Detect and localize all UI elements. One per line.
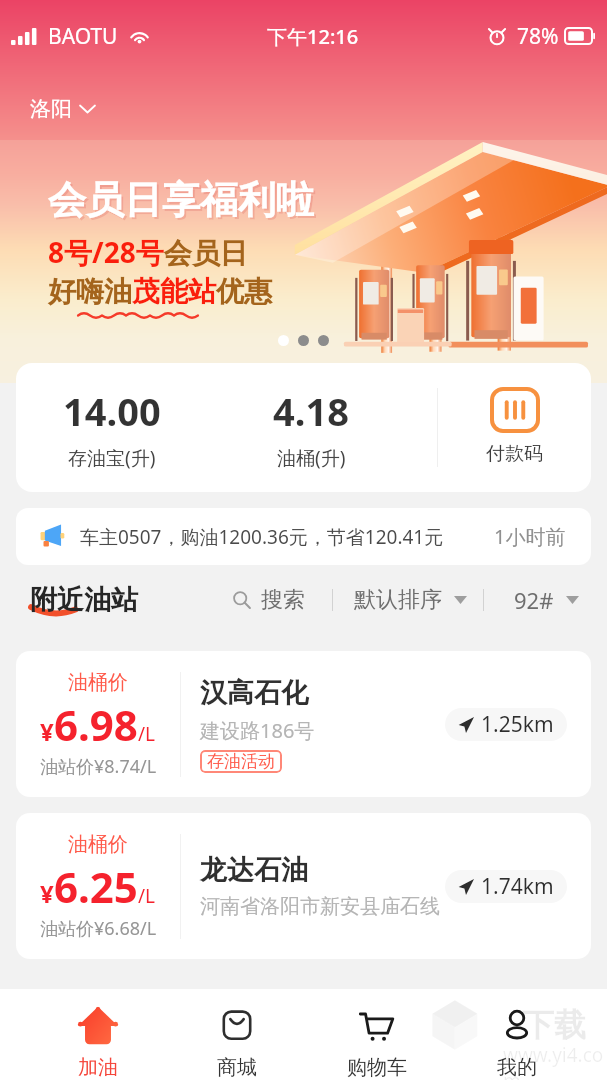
staticText: 建设路186号	[200, 717, 315, 744]
staticText: 车主0507，购油1200.36元，节省120.41元	[80, 524, 444, 550]
staticText: 8号/28号会员日	[48, 233, 248, 271]
staticText: 油桶价	[68, 670, 128, 695]
button[interactable]: 洛阳	[30, 96, 95, 122]
button[interactable]: 1.25km	[445, 708, 567, 741]
staticText: 洛阳	[30, 96, 72, 122]
staticText: 4.18	[273, 385, 349, 437]
staticText: 油站价¥8.74/L	[40, 754, 157, 779]
staticText: 78%	[517, 22, 559, 51]
staticText: ¥	[40, 877, 54, 910]
staticText: 1小时前	[494, 523, 566, 550]
staticText: 油桶(升)	[277, 445, 346, 471]
other: 付款码	[492, 389, 538, 431]
button[interactable]: 4.18	[207, 363, 415, 492]
staticText: /L	[138, 883, 156, 909]
button[interactable]: 油桶价	[16, 651, 591, 797]
staticText: 6.25	[54, 858, 138, 915]
button[interactable]: 搜索	[233, 586, 305, 614]
staticText: ¥	[40, 715, 54, 748]
staticText: 会员日享福利啦	[48, 176, 314, 224]
staticText: BAOTU	[48, 22, 118, 51]
staticText: 下载	[522, 1005, 586, 1045]
staticText: 我的	[497, 1055, 537, 1080]
button[interactable]: 购物车	[307, 989, 447, 1080]
button[interactable]: 我的	[447, 989, 587, 1080]
staticText: 付款码	[486, 442, 543, 466]
staticText: 购物车	[347, 1055, 407, 1080]
staticText: 搜索	[261, 586, 305, 614]
staticText: 油桶价	[68, 832, 128, 857]
staticText: 存油活动	[207, 751, 275, 772]
button[interactable]: 商城	[167, 989, 307, 1080]
staticText: 6.98	[54, 696, 138, 753]
staticText: 附近油站	[30, 583, 138, 617]
staticText: www.yi4.com	[503, 1042, 607, 1080]
staticText: 商城	[217, 1055, 257, 1080]
staticText: 加油	[78, 1055, 118, 1080]
staticText: 存油宝(升)	[68, 445, 156, 471]
staticText: /L	[138, 721, 156, 747]
button[interactable]: 油桶价	[16, 813, 591, 959]
staticText: 下午12:16	[267, 23, 359, 50]
other: 购物车	[355, 1006, 399, 1046]
staticText: 好嗨油茂能站优惠	[48, 274, 272, 309]
staticText: 油站价¥6.68/L	[40, 916, 157, 941]
staticText: 1.25km	[481, 710, 554, 739]
button[interactable]: 1.74km	[445, 870, 567, 903]
staticText: 会员日享福利啦	[50, 178, 316, 226]
staticText: 龙达石油	[200, 853, 308, 887]
button[interactable]: 付款码	[438, 363, 591, 492]
other: 加油	[76, 1006, 120, 1046]
button[interactable]: 车主0507，购油1200.36元，节省120.41元	[16, 508, 591, 565]
button[interactable]: 14.00	[16, 363, 207, 492]
button[interactable]: 默认排序	[354, 586, 467, 614]
staticText: 14.00	[63, 385, 161, 437]
other: 我的	[495, 1006, 539, 1046]
staticText: 92#	[514, 585, 554, 615]
button[interactable]: 92#	[514, 585, 579, 615]
staticText: 1.74km	[481, 872, 554, 901]
staticText: 河南省洛阳市新安县庙石线	[200, 894, 440, 919]
staticText: 默认排序	[354, 586, 442, 614]
staticText: 汉高石化	[200, 676, 308, 710]
button[interactable]: 加油	[28, 989, 167, 1080]
other: 商城	[215, 1006, 259, 1046]
